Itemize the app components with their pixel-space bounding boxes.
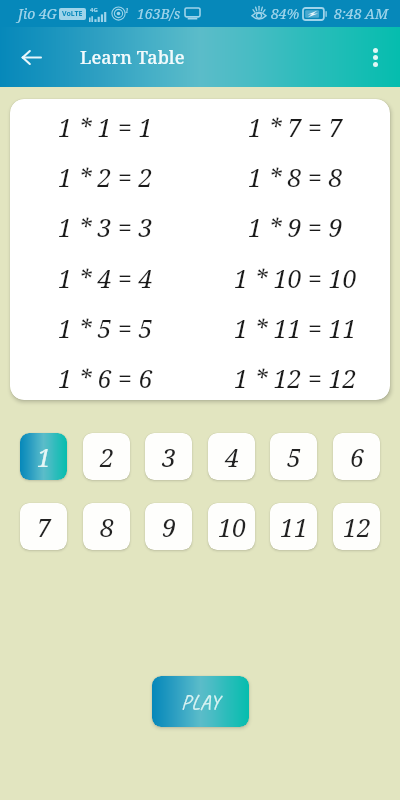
button[interactable]: 7 — [20, 503, 67, 550]
staticText: PLAY — [181, 689, 220, 715]
staticText: 1 — [125, 6, 129, 16]
staticText: 2 — [100, 440, 114, 474]
staticText: Learn Table — [80, 45, 185, 70]
staticText: 7 — [37, 510, 51, 544]
staticText: 1 * 8 = 8 — [248, 160, 343, 194]
staticText: Jio 4G — [18, 4, 57, 23]
button[interactable]: 1 — [20, 433, 67, 480]
staticText: 1 * 1 = 1 — [58, 110, 153, 144]
button[interactable]: 5 — [270, 433, 317, 480]
staticText: 9 — [162, 510, 176, 544]
button[interactable]: 2 — [83, 433, 130, 480]
staticText: 1 * 9 = 9 — [248, 210, 343, 244]
staticText: 6 — [350, 440, 364, 474]
staticText: 1 * 11 = 11 — [234, 311, 357, 345]
staticText: 8:48 AM — [334, 4, 389, 23]
staticText: 1 * 7 = 7 — [248, 110, 343, 144]
staticText: 12 — [343, 510, 371, 544]
staticText: 163B/s — [137, 4, 181, 23]
staticText: 84% — [271, 4, 300, 23]
button[interactable]: 10 — [208, 503, 255, 550]
button[interactable]: 11 — [270, 503, 317, 550]
staticText: 4G — [90, 6, 98, 14]
button[interactable]: 12 — [333, 503, 380, 550]
staticText: 5 — [287, 440, 301, 474]
button[interactable]: 8 — [83, 503, 130, 550]
staticText: 1 * 3 = 3 — [58, 210, 153, 244]
staticText: 1 * 12 = 12 — [234, 361, 357, 395]
staticText: 4 — [225, 440, 239, 474]
button[interactable]: PLAY — [152, 676, 249, 727]
staticText: 1 * 5 = 5 — [58, 311, 153, 345]
staticText: 1 * 6 = 6 — [58, 361, 153, 395]
staticText: 3 — [162, 440, 176, 474]
button[interactable]: More options — [358, 40, 392, 74]
staticText: 1 * 4 = 4 — [58, 261, 153, 295]
staticText: 1 * 2 = 2 — [58, 160, 153, 194]
staticText: VoLTE — [62, 9, 83, 19]
staticText: 8 — [100, 510, 114, 544]
button[interactable]: 3 — [145, 433, 192, 480]
button[interactable]: 4 — [208, 433, 255, 480]
button[interactable]: 6 — [333, 433, 380, 480]
staticText: 10 — [218, 510, 246, 544]
button[interactable]: Back — [14, 40, 48, 74]
button[interactable]: 9 — [145, 503, 192, 550]
staticText: 1 — [37, 440, 51, 474]
staticText: 1 * 10 = 10 — [234, 261, 357, 295]
staticText: 11 — [280, 510, 308, 544]
